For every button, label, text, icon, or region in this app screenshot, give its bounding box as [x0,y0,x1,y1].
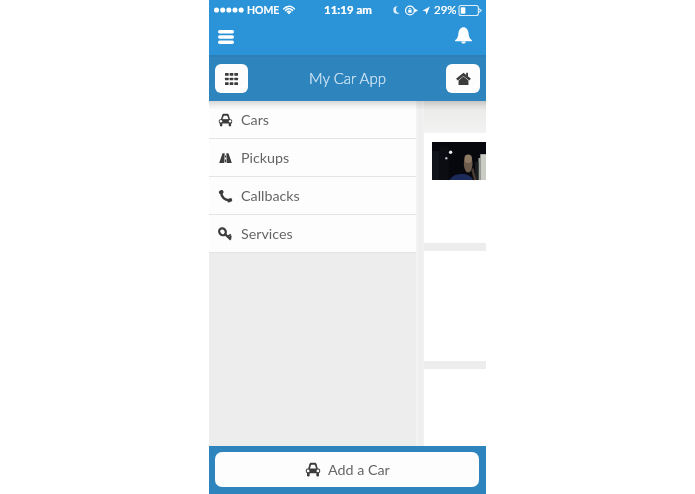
button[interactable]: Notifications [448,22,480,54]
button[interactable]: Home [446,64,480,93]
staticText: 29% [434,3,457,17]
staticText: Callbacks [241,187,300,204]
staticText: HOME [247,4,280,17]
button[interactable]: Pickups [209,139,416,177]
staticText: My Car App [309,69,386,87]
button[interactable]: Callbacks [209,177,416,215]
staticText: Services [241,225,293,242]
button[interactable]: Add a Car [215,452,479,487]
staticText: Pickups [241,149,290,166]
staticText: Add a Car [328,461,390,478]
button[interactable]: Services [209,215,416,253]
button[interactable]: Open menu [209,21,242,54]
button[interactable]: Cars [209,101,416,139]
staticText: 11:19 am [324,3,372,17]
staticText: Cars [241,111,270,128]
button[interactable]: Apps grid [215,64,248,93]
